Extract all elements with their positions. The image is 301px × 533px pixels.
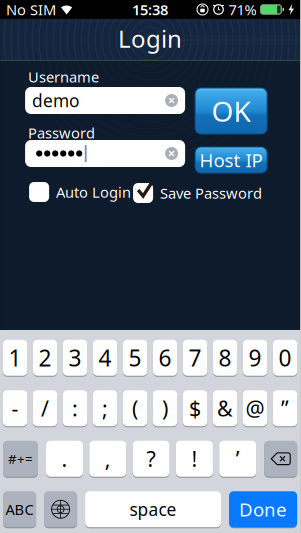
button[interactable] [165, 94, 178, 107]
staticText: . [61, 445, 67, 473]
button[interactable]: 8 [213, 340, 237, 376]
staticText: Username [28, 67, 99, 86]
button[interactable]: 7 [183, 340, 207, 376]
button[interactable] [165, 147, 178, 160]
staticText: Auto Login [56, 182, 131, 202]
staticText: OK [212, 92, 251, 130]
button[interactable] [44, 491, 77, 527]
button[interactable]: / [33, 390, 57, 426]
button[interactable]: 6 [153, 340, 177, 376]
staticText: 2 [39, 343, 52, 373]
staticText: $ [189, 394, 201, 422]
staticText: Save Password [160, 183, 262, 203]
button[interactable]: OK [195, 88, 267, 134]
staticText: ABC [6, 499, 34, 519]
button[interactable] [264, 441, 297, 477]
staticText: 6 [159, 343, 172, 373]
button[interactable]: 0 [273, 340, 297, 376]
button[interactable]: & [213, 390, 237, 426]
button[interactable]: 3 [63, 340, 87, 376]
button[interactable]: , [89, 441, 126, 477]
staticText: ) [162, 394, 168, 422]
staticText: 71% [228, 0, 256, 19]
staticText: 15:38 [132, 0, 168, 19]
button[interactable]: ? [133, 441, 170, 477]
staticText: / [41, 394, 49, 422]
staticText: No SIM [6, 0, 56, 19]
staticText: : [72, 394, 78, 422]
staticText: @ [246, 394, 265, 422]
staticText: #+= [8, 450, 33, 468]
button[interactable]: 4 [93, 340, 117, 376]
button[interactable]: Host IP [195, 147, 267, 173]
button[interactable]: space [85, 491, 221, 527]
staticText: ; [102, 394, 108, 422]
staticText: space [130, 498, 177, 521]
button[interactable]: ; [93, 390, 117, 426]
staticText: 3 [69, 343, 82, 373]
button[interactable]: : [63, 390, 87, 426]
staticText: , [105, 445, 111, 473]
staticText: Host IP [200, 148, 263, 172]
button[interactable]: #+= [3, 441, 38, 477]
staticText: 9 [249, 343, 262, 373]
staticText: 7 [189, 343, 202, 373]
staticText: demo [32, 89, 79, 112]
staticText: ? [147, 445, 156, 473]
staticText: 8 [219, 343, 232, 373]
button[interactable]: ABC [3, 491, 36, 527]
staticText: 5 [129, 343, 142, 373]
button[interactable]: ) [153, 390, 177, 426]
button[interactable]: Auto Login [29, 182, 131, 202]
staticText: ’ [236, 445, 240, 473]
button[interactable]: 1 [3, 340, 27, 376]
button[interactable]: 5 [123, 340, 147, 376]
button[interactable]: ” [273, 390, 297, 426]
staticText: ” [281, 394, 289, 422]
staticText: Login [118, 23, 182, 54]
button[interactable] [25, 140, 185, 167]
button[interactable]: Done [229, 491, 297, 527]
button[interactable]: ’ [219, 441, 256, 477]
button[interactable]: $ [183, 390, 207, 426]
staticText: ( [132, 394, 138, 422]
button[interactable]: ! [176, 441, 213, 477]
staticText: ! [191, 445, 197, 473]
button[interactable]: demo [25, 87, 185, 114]
staticText: 0 [279, 343, 292, 373]
button[interactable]: 9 [243, 340, 267, 376]
button[interactable]: 2 [33, 340, 57, 376]
staticText: Done [239, 497, 287, 522]
button[interactable]: Save Password [133, 182, 262, 204]
button[interactable]: ( [123, 390, 147, 426]
staticText: Password [28, 123, 95, 142]
staticText: & [217, 394, 233, 422]
staticText: 4 [99, 343, 112, 373]
button[interactable]: @ [243, 390, 267, 426]
staticText: 1 [9, 343, 22, 373]
button[interactable]: . [46, 441, 83, 477]
button[interactable]: - [3, 390, 27, 426]
staticText: - [12, 394, 19, 422]
